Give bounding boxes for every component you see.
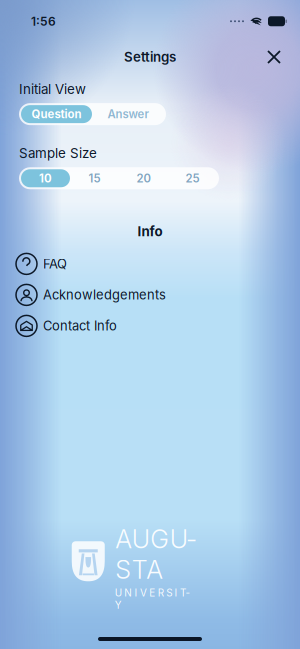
- staticText: Question: [31, 107, 81, 121]
- staticText: Acknowledgements: [43, 287, 166, 303]
- staticText: Sample Size: [19, 145, 97, 161]
- staticText: Info: [137, 223, 162, 239]
- staticText: AUGUSTA: [115, 524, 196, 585]
- button[interactable]: 10: [21, 169, 70, 187]
- button[interactable]: Question: [21, 105, 92, 123]
- staticText: 20: [136, 171, 150, 185]
- staticText: Settings: [124, 49, 176, 65]
- staticText: Contact Info: [43, 318, 117, 334]
- button[interactable]: Contact Info: [16, 310, 281, 341]
- button[interactable]: Answer: [92, 105, 164, 123]
- button[interactable]: 15: [70, 169, 119, 187]
- button[interactable]: 25: [168, 169, 217, 187]
- button[interactable]: Acknowledgements: [16, 279, 281, 310]
- staticText: 1:56: [31, 14, 56, 28]
- staticText: 15: [88, 171, 100, 185]
- button[interactable]: Close: [260, 43, 288, 71]
- staticText: 10: [39, 171, 52, 185]
- staticText: Initial View: [19, 81, 86, 97]
- staticText: 25: [185, 171, 199, 185]
- staticText: Answer: [107, 107, 148, 121]
- button[interactable]: FAQ: [16, 248, 281, 279]
- staticText: FAQ: [43, 256, 67, 272]
- staticText: UNIVERSITY: [115, 587, 196, 599]
- button[interactable]: 20: [119, 169, 168, 187]
